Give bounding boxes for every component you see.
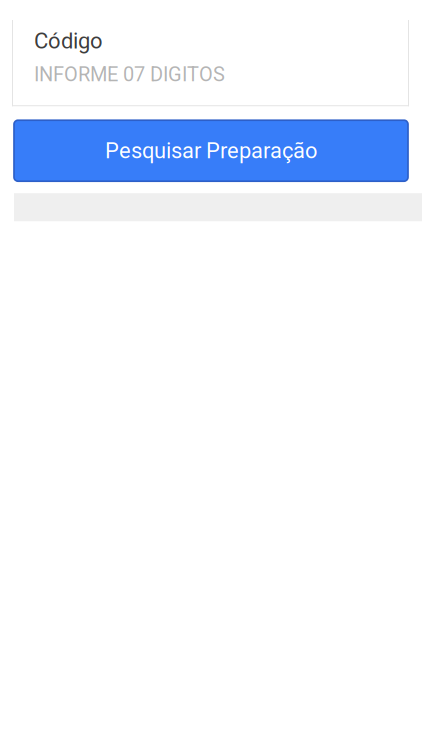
staticText: INFORME 07 DIGITOS: [34, 63, 225, 86]
button[interactable]: Código: [12, 17, 409, 106]
staticText: Pesquisar Preparação: [105, 138, 317, 163]
button[interactable]: Pesquisar Preparação: [14, 120, 408, 181]
staticText: Código: [34, 28, 103, 54]
